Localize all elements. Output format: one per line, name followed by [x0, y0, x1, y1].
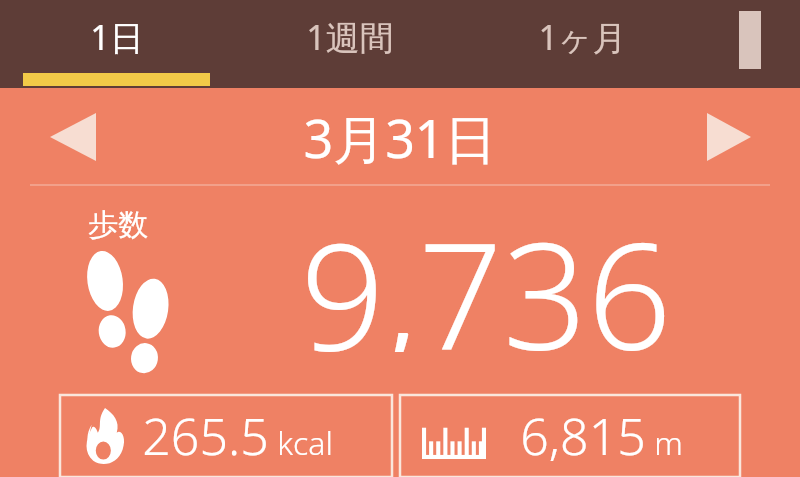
button[interactable]: More options — [712, 0, 788, 80]
staticText: 6,815 — [520, 402, 646, 470]
other: Distance — [422, 425, 486, 459]
button[interactable]: 3月31日 — [160, 88, 640, 186]
other: Calories — [84, 408, 126, 464]
button[interactable]: 1日 — [0, 0, 233, 74]
staticText: 1日 — [90, 14, 144, 60]
staticText: m — [654, 421, 683, 465]
button[interactable]: 1ヶ月 — [466, 0, 699, 74]
other: Steps — [86, 248, 170, 364]
button[interactable]: Previous day — [26, 96, 120, 178]
button[interactable]: 1週間 — [233, 0, 466, 74]
staticText: 1週間 — [306, 14, 394, 60]
staticText: 歩数 — [88, 206, 148, 244]
staticText: 1ヶ月 — [538, 14, 627, 60]
staticText: 265.5 — [142, 402, 269, 470]
button[interactable]: Distance — [400, 395, 740, 477]
staticText: 9,736 — [300, 192, 672, 352]
staticText: kcal — [277, 421, 333, 465]
button[interactable]: Calories — [60, 395, 392, 477]
button[interactable]: Next day — [682, 96, 776, 178]
staticText: 3月31日 — [303, 102, 497, 173]
